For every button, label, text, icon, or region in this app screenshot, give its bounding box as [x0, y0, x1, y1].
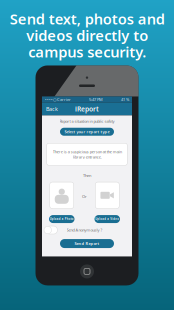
staticText: There is a suspicious person at the main… — [52, 149, 121, 159]
staticText: ••••○ Carrier — [45, 97, 71, 102]
staticText: iReport — [75, 104, 99, 113]
staticText: Send Report — [74, 241, 99, 246]
button[interactable]: Upload a Video — [94, 215, 120, 223]
button[interactable]: Send Report — [60, 239, 114, 248]
staticText: Select your report type — [64, 129, 109, 134]
staticText: Back — [46, 105, 58, 112]
button[interactable]: Upload a Photo — [49, 215, 74, 223]
staticText: 41 % — [121, 97, 129, 102]
button[interactable]: Back — [42, 102, 62, 115]
staticText: Send text, photos and videos directly to… — [9, 9, 164, 61]
staticText: 5:47 PM — [89, 97, 103, 102]
staticText: Send Anonymously ? — [66, 227, 102, 233]
staticText: Then — [83, 173, 91, 178]
staticText: Upload a Video — [95, 217, 119, 221]
button[interactable]: Select your report type — [60, 128, 114, 136]
staticText: Or — [82, 194, 87, 199]
staticText: Report a situation in public safety — [59, 118, 114, 124]
staticText: Upload a Photo — [50, 217, 74, 221]
